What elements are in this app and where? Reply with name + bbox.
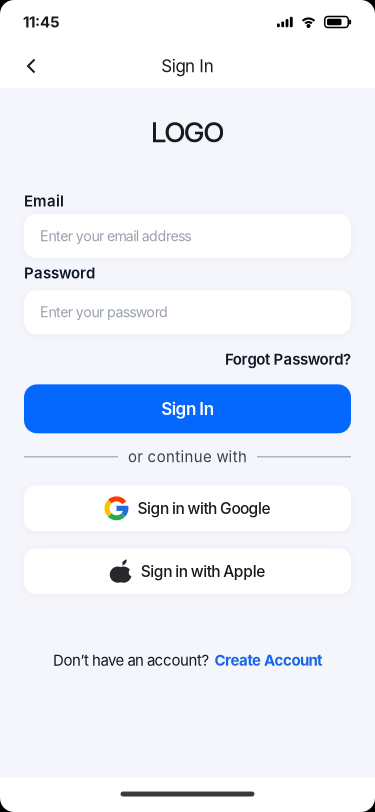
button[interactable]: Forgot Password? — [225, 350, 351, 368]
staticText: Enter your email address — [40, 227, 191, 245]
button[interactable]: Sign In — [24, 384, 351, 433]
button[interactable]: Enter your password — [24, 290, 351, 334]
staticText: 11:45 — [23, 13, 60, 31]
button[interactable]: Create Account — [214, 651, 322, 669]
staticText: Password — [24, 264, 95, 282]
button[interactable] — [0, 46, 37, 86]
button[interactable]: Enter your email address — [24, 214, 351, 258]
staticText: Sign in with Apple — [141, 562, 265, 581]
staticText: Sign In — [161, 56, 214, 76]
staticText: Email — [24, 192, 64, 210]
button[interactable]: Sign in with Google — [24, 485, 351, 531]
staticText: Don’t have an account? — [53, 651, 209, 669]
button[interactable]: Sign in with Apple — [24, 548, 351, 594]
staticText: or continue with — [128, 448, 247, 466]
staticText: Forgot Password? — [225, 350, 351, 368]
staticText: Sign In — [161, 398, 214, 419]
staticText: Enter your password — [40, 304, 168, 321]
staticText: LOGO — [151, 115, 224, 149]
staticText: Sign in with Google — [137, 499, 270, 518]
staticText: Create Account — [214, 651, 322, 669]
